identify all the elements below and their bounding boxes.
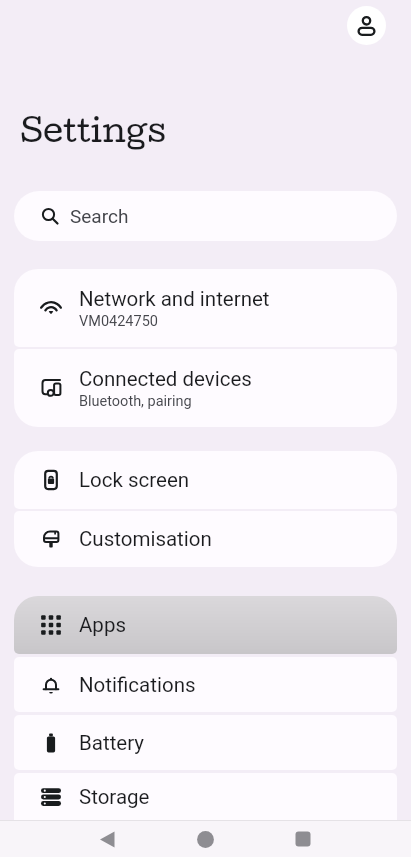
button[interactable]: Battery — [14, 715, 397, 770]
staticText: Bluetooth, pairing — [79, 393, 192, 410]
staticText: Network and internet — [79, 287, 270, 311]
button[interactable]: Connected devices — [14, 349, 397, 427]
staticText: Lock screen — [79, 468, 190, 492]
button[interactable] — [347, 6, 386, 45]
button[interactable]: Storage — [14, 773, 397, 820]
staticText: Settings — [20, 108, 166, 149]
button[interactable]: Search — [14, 191, 397, 241]
staticText: Connected devices — [79, 367, 252, 391]
button[interactable]: Notifications — [14, 657, 397, 712]
button[interactable] — [295, 831, 311, 847]
button[interactable]: Lock screen — [14, 451, 397, 509]
button[interactable] — [196, 830, 215, 849]
staticText: VM0424750 — [79, 313, 158, 330]
button[interactable]: Apps — [14, 596, 397, 654]
staticText: Search — [70, 205, 129, 227]
staticText: Notifications — [79, 673, 196, 697]
staticText: Storage — [79, 785, 150, 809]
staticText: Customisation — [79, 527, 212, 551]
staticText: Apps — [79, 613, 126, 637]
button[interactable]: Customisation — [14, 511, 397, 567]
button[interactable]: Network and internet — [14, 269, 397, 347]
button[interactable] — [97, 831, 117, 848]
staticText: Battery — [79, 731, 145, 755]
